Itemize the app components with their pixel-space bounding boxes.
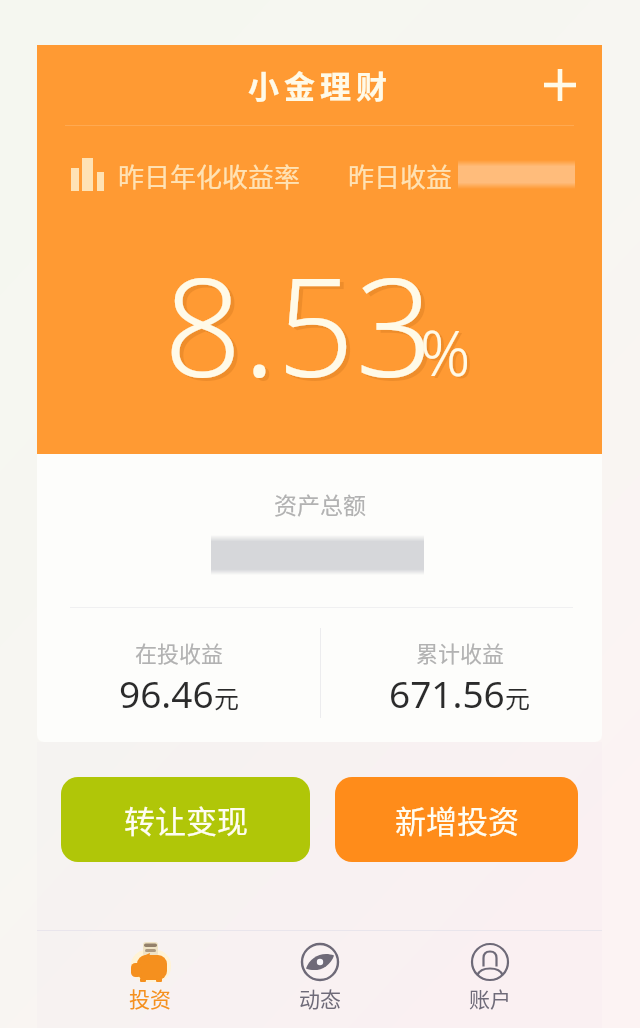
button[interactable]: 转让变现 [61,777,310,862]
button[interactable]: 投资 [65,936,235,1028]
staticText: 8.53 [168,235,439,420]
button[interactable]: 账户 [405,936,575,1028]
staticText: 671.56 [389,668,505,718]
staticText: 8.53 [164,232,435,417]
button[interactable]: 累计收益 [335,630,585,718]
button[interactable]: 新增投资 [335,777,578,862]
staticText: 累计收益 [416,636,505,668]
staticText: 动态 [299,983,341,1013]
staticText: 在投收益 [135,636,224,668]
staticText: % [423,312,474,396]
staticText: 元 [505,679,531,715]
staticText: 投资 [129,983,171,1013]
staticText: % [420,310,471,394]
staticText: 昨日收益 [348,157,453,195]
button[interactable]: Add [533,58,587,112]
button[interactable]: 在投收益 [54,630,304,718]
staticText: 资产总额 [274,487,366,520]
button[interactable]: 动态 [235,936,405,1028]
staticText: 账户 [469,983,511,1013]
staticText: 小金理财 [248,62,392,107]
staticText: 转让变现 [124,797,248,842]
staticText: 新增投资 [395,797,519,842]
staticText: 元 [214,679,240,715]
staticText: 昨日年化收益率 [118,157,301,195]
staticText: 96.46 [119,668,214,718]
